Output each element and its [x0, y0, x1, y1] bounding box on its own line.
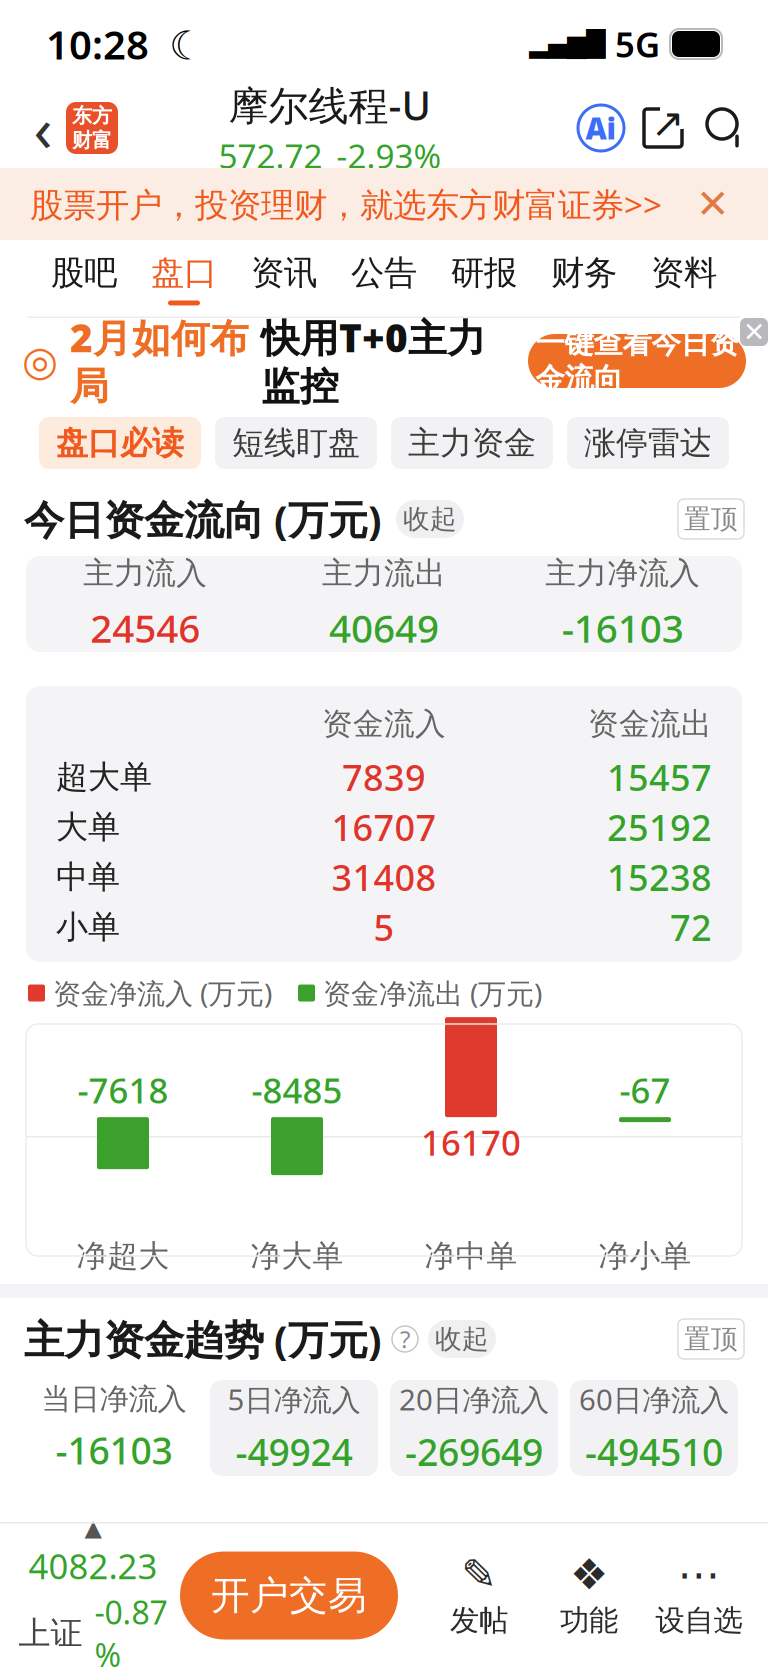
staticText: -16103 [562, 602, 684, 653]
button[interactable]: 关闭广告 [740, 318, 768, 346]
button[interactable]: 开户交易 [180, 1551, 398, 1639]
button[interactable]: 60日净流入 [570, 1380, 738, 1476]
button[interactable]: 短线盯盘 [215, 417, 377, 469]
staticText: -494510 [585, 1427, 723, 1476]
staticText: 25192 [607, 803, 712, 851]
button[interactable]: Back [20, 98, 66, 158]
staticText: 10:28 ☾ [46, 17, 205, 70]
staticText: ✕ [743, 317, 765, 347]
staticText: 股票开户，投资理财，就选东方财富证券>> [30, 182, 662, 226]
staticText: -8485 [251, 1067, 342, 1113]
button[interactable]: 20日净流入 [390, 1380, 558, 1476]
button[interactable]: 主力资金 [391, 417, 553, 469]
staticText: 主力资金趋势 (万元) [24, 1312, 382, 1365]
staticText: 7839 [342, 753, 426, 801]
button[interactable]: AI 助手 [578, 105, 624, 151]
staticText: ✎ [461, 1550, 497, 1599]
staticText: 快用T+0主力监控 [261, 312, 486, 410]
button[interactable]: 东方财富 [66, 102, 118, 154]
staticText: ❖ [570, 1550, 608, 1599]
button[interactable]: 涨停雷达 [567, 417, 729, 469]
staticText: 中单 [56, 857, 120, 897]
staticText: 短线盯盘 [232, 423, 360, 463]
staticText: 涨停雷达 [584, 423, 712, 463]
staticText: 资讯 [251, 252, 317, 293]
button[interactable]: 盘口 [134, 252, 234, 305]
staticText: 设自选 [655, 1602, 742, 1638]
staticText: 发帖 [450, 1602, 508, 1638]
staticText: 净大单 [250, 1237, 343, 1275]
staticText: ⋯ [677, 1550, 720, 1599]
button[interactable]: 当日净流入 [30, 1380, 198, 1476]
staticText: 主力净流入 [545, 554, 700, 592]
staticText: 股吧 [51, 252, 117, 293]
staticText: Ai [585, 108, 616, 147]
button[interactable]: 盘口必读 [39, 417, 201, 469]
staticText: 收起 [403, 503, 457, 535]
button[interactable]: 5日净流入 [210, 1380, 378, 1476]
staticText: 31408 [331, 853, 436, 901]
button[interactable]: 置顶 [678, 1319, 744, 1359]
staticText: 4082.23 [28, 1543, 157, 1589]
staticText: 60日净流入 [579, 1380, 729, 1419]
staticText: 上证 [18, 1614, 82, 1653]
button[interactable]: 设自选 [644, 1552, 754, 1638]
staticText: 2月如何布局 [70, 312, 249, 410]
staticText: 功能 [560, 1602, 618, 1638]
staticText: 40649 [329, 602, 439, 653]
staticText: 盘口必读 [56, 423, 184, 463]
staticText: 572.72 [218, 133, 322, 178]
staticText: -67 [619, 1067, 670, 1113]
staticText: 摩尔线程-U [228, 78, 431, 131]
staticText: 小单 [56, 907, 120, 947]
staticText: 20日净流入 [399, 1380, 549, 1419]
staticText: 资金流出 [588, 705, 712, 743]
button[interactable]: 发帖 [424, 1552, 534, 1638]
staticText: 净超大 [76, 1237, 169, 1275]
staticText: ✕ [696, 181, 730, 227]
button[interactable]: 收起 [396, 500, 464, 538]
button[interactable]: 收起 [428, 1320, 496, 1358]
staticText: 24546 [90, 602, 200, 653]
staticText: ↗ [651, 100, 685, 146]
button[interactable]: 置顶 [678, 499, 744, 539]
staticText: 15238 [607, 853, 712, 901]
staticText: 一键查看今日资金流向 [535, 325, 738, 397]
staticText: 资金净流入 (万元) [53, 974, 272, 1012]
staticText: 主力资金 [408, 423, 536, 463]
button[interactable]: 资讯 [234, 252, 334, 305]
button[interactable]: 说明 [392, 1326, 418, 1352]
staticText: 盘口 [151, 252, 217, 293]
staticText: 东方 [72, 103, 112, 128]
staticText: 当日净流入 [41, 1381, 186, 1417]
staticText: 财富 [72, 128, 112, 153]
staticText: 5 [373, 903, 394, 951]
staticText: -2.93% [336, 133, 441, 178]
staticText: -7618 [77, 1067, 168, 1113]
staticText: 主力流入 [83, 554, 207, 592]
staticText: ‹ [33, 87, 52, 169]
staticText: 72 [670, 903, 712, 951]
staticText: 开户交易 [211, 1572, 367, 1619]
staticText: ? [400, 1323, 410, 1355]
button[interactable]: Search [702, 105, 748, 151]
button[interactable]: Share [640, 105, 686, 151]
staticText: 主力流出 [322, 554, 446, 592]
staticText: 资料 [651, 252, 717, 293]
button[interactable]: 资料 [634, 252, 734, 305]
button[interactable]: 财务 [534, 252, 634, 305]
staticText: ◎ [22, 337, 58, 384]
staticText: 收起 [435, 1323, 489, 1355]
staticText: 净中单 [424, 1237, 517, 1275]
button[interactable]: 公告 [334, 252, 434, 305]
staticText: 净小单 [598, 1237, 691, 1275]
button[interactable]: 功能 [534, 1552, 644, 1638]
staticText: 超大单 [56, 757, 152, 797]
button[interactable]: 一键查看今日资金流向 [528, 334, 746, 388]
staticText: -0.87% [94, 1591, 167, 1669]
button[interactable]: 关闭 [688, 179, 738, 229]
button[interactable]: 研报 [434, 252, 534, 305]
button[interactable]: 股吧 [34, 252, 134, 305]
staticText: -16103 [55, 1425, 172, 1475]
staticText: 置顶 [684, 1323, 738, 1355]
